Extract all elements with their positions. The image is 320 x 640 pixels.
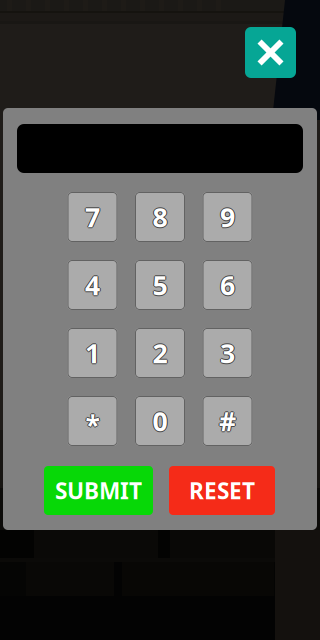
staticText: 6 [220, 268, 235, 304]
staticText: 7 [84, 199, 99, 235]
staticText: SUBMIT [55, 475, 142, 505]
button[interactable]: RESET [169, 466, 275, 515]
staticText: 9 [220, 198, 235, 234]
button[interactable]: 5 [135, 260, 185, 310]
staticText: * [84, 407, 98, 443]
staticText: 6 [219, 267, 234, 303]
button[interactable]: 1 [67, 328, 117, 378]
staticText: 6 [220, 266, 235, 302]
button[interactable]: * [67, 396, 117, 446]
staticText: 8 [152, 199, 167, 235]
staticText: 2 [152, 334, 167, 370]
staticText: 7 [85, 198, 100, 234]
staticText: 2 [151, 335, 166, 371]
staticText: 1 [85, 335, 100, 371]
staticText: 4 [84, 267, 99, 303]
staticText: 3 [221, 335, 236, 371]
staticText: RESET [189, 475, 255, 505]
staticText: * [85, 407, 99, 443]
staticText: 3 [220, 336, 235, 372]
staticText: # [218, 403, 235, 439]
staticText: 9 [220, 200, 235, 236]
staticText: # [220, 403, 237, 439]
staticText: 4 [85, 268, 100, 304]
staticText: * [85, 408, 99, 444]
staticText: 9 [219, 199, 234, 235]
staticText: 7 [86, 199, 101, 235]
button[interactable]: 9 [202, 192, 252, 242]
staticText: 1 [86, 335, 101, 371]
staticText: # [219, 403, 236, 439]
staticText: 5 [152, 266, 167, 302]
staticText: 9 [221, 199, 236, 235]
staticText: 6 [220, 267, 235, 303]
button[interactable]: 8 [135, 192, 185, 242]
staticText: 5 [151, 267, 166, 303]
staticText: # [219, 402, 236, 438]
staticText: 4 [86, 267, 101, 303]
staticText: # [219, 404, 236, 440]
staticText: 3 [220, 335, 235, 371]
button[interactable]: 7 [67, 192, 117, 242]
staticText: 7 [85, 200, 100, 236]
staticText: 3 [219, 335, 234, 371]
staticText: 7 [85, 199, 100, 235]
staticText: 2 [153, 335, 168, 371]
staticText: 1 [85, 336, 100, 372]
button[interactable]: # [202, 396, 252, 446]
button[interactable]: 3 [202, 328, 252, 378]
staticText: 5 [153, 267, 168, 303]
staticText: 4 [85, 267, 100, 303]
staticText: 6 [221, 267, 236, 303]
staticText: 9 [220, 199, 235, 235]
staticText: 8 [153, 199, 168, 235]
staticText: 8 [152, 198, 167, 234]
staticText: 0 [151, 403, 166, 439]
button[interactable]: 2 [135, 328, 185, 378]
staticText: 0 [152, 404, 167, 440]
staticText: 5 [152, 268, 167, 304]
staticText: 5 [152, 267, 167, 303]
staticText: 3 [220, 334, 235, 370]
staticText: 8 [152, 200, 167, 236]
staticText: 8 [151, 199, 166, 235]
staticText: * [85, 406, 99, 442]
button[interactable]: 0 [135, 396, 185, 446]
staticText: 1 [84, 335, 99, 371]
staticText: 2 [152, 336, 167, 372]
staticText: 0 [153, 403, 168, 439]
staticText: * [86, 407, 100, 443]
button[interactable]: SUBMIT [44, 466, 153, 515]
staticText: 0 [152, 403, 167, 439]
staticText: 1 [85, 334, 100, 370]
staticText: 0 [152, 402, 167, 438]
staticText: 2 [152, 335, 167, 371]
staticText: 4 [85, 266, 100, 302]
button[interactable]: 6 [202, 260, 252, 310]
button[interactable]: 4 [67, 260, 117, 310]
button[interactable]: Close [245, 27, 296, 78]
